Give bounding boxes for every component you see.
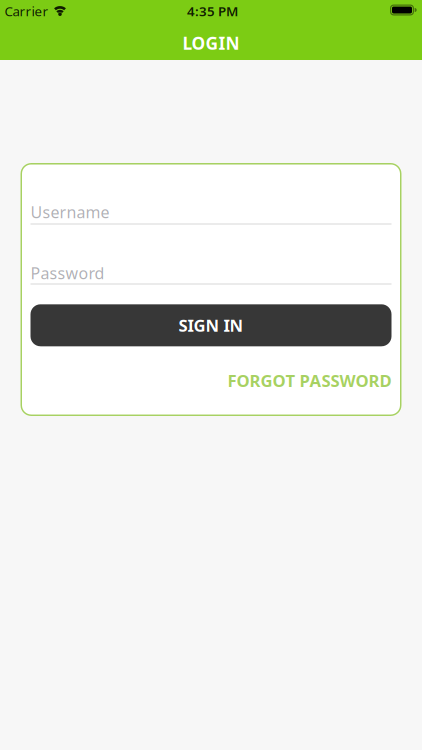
- secureTextField[interactable]: Password: [30, 163, 391, 284]
- staticText: Carrier: [4, 2, 48, 20]
- staticText: FORGOT PASSWORD: [227, 369, 391, 392]
- staticText: SIGN IN: [178, 314, 243, 336]
- button[interactable]: SIGN IN: [30, 304, 391, 346]
- staticText: Username: [30, 201, 109, 223]
- staticText: LOGIN: [182, 31, 239, 54]
- textField[interactable]: Username: [30, 163, 391, 224]
- button[interactable]: FORGOT PASSWORD: [227, 369, 391, 392]
- staticText: Password: [30, 262, 104, 284]
- staticText: 4:35 PM: [187, 2, 238, 20]
